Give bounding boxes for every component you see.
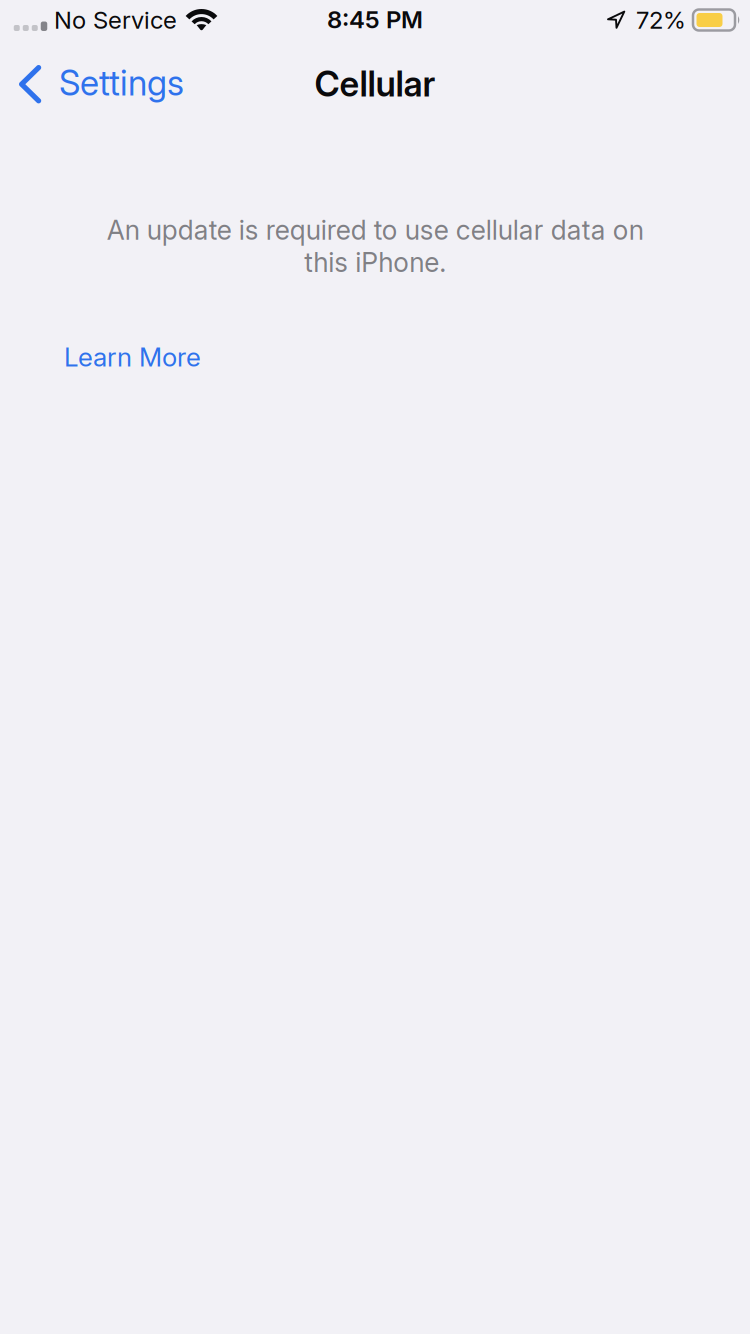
staticText: 8:45 PM [327,5,423,34]
staticText: No Service [54,5,177,34]
staticText: 72% [636,5,686,34]
staticText: Settings [59,62,184,104]
staticText: Learn More [64,341,201,373]
button[interactable]: Learn More [0,334,215,380]
staticText: An update is required to use cellular da… [106,214,643,278]
staticText: Cellular [314,63,435,105]
button[interactable]: Settings [0,55,198,113]
